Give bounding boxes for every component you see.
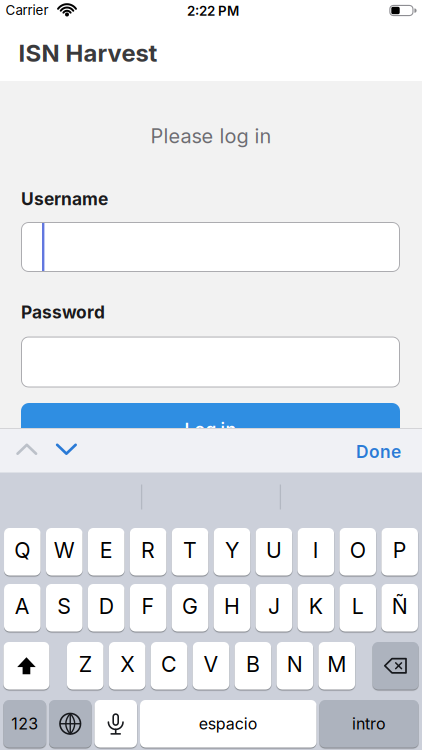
button[interactable]: R (130, 528, 166, 575)
staticText: J (268, 594, 280, 619)
staticText: X (120, 652, 134, 677)
button[interactable]: Ñ (381, 584, 418, 631)
button[interactable]: Username (21, 222, 400, 272)
button[interactable]: Previous field (0, 444, 38, 456)
staticText: Q (14, 538, 30, 563)
button[interactable]: J (256, 584, 292, 631)
button[interactable]: O (339, 528, 376, 575)
staticText: 2:22 PM (187, 3, 239, 19)
staticText: Log in (184, 419, 236, 440)
staticText: I (313, 538, 319, 563)
staticText: U (266, 538, 282, 563)
staticText: A (15, 594, 30, 619)
button[interactable]: K (297, 584, 334, 631)
button[interactable]: Shift (3, 642, 49, 689)
button[interactable]: G (172, 584, 208, 631)
staticText: Password (21, 302, 105, 322)
button[interactable]: Q (4, 528, 41, 575)
button[interactable]: Password (21, 336, 400, 387)
button[interactable]: E (88, 528, 124, 575)
button[interactable]: Log in (21, 403, 400, 453)
button[interactable]: V (193, 642, 229, 689)
staticText: Y (225, 538, 239, 563)
staticText: H (224, 594, 240, 619)
button[interactable]: S (46, 584, 82, 631)
staticText: E (100, 538, 113, 563)
button[interactable]: X (109, 642, 145, 689)
staticText: Done (356, 441, 401, 462)
staticText: O (350, 538, 366, 563)
staticText: 123 (11, 714, 38, 733)
button[interactable]: Y (214, 528, 250, 575)
staticText: Username (21, 189, 108, 209)
staticText: W (54, 538, 75, 563)
staticText: F (142, 594, 155, 619)
button[interactable]: U (256, 528, 292, 575)
button[interactable]: H (214, 584, 250, 631)
button[interactable]: M (318, 642, 355, 689)
button[interactable]: T (172, 528, 208, 575)
button[interactable]: B (235, 642, 271, 689)
staticText: R (141, 538, 155, 563)
staticText: L (352, 594, 364, 619)
button[interactable]: Done (356, 440, 422, 460)
staticText: intro (352, 714, 386, 733)
staticText: espacio (199, 714, 258, 733)
button[interactable]: Next keyboard (49, 700, 91, 747)
button[interactable]: Delete (373, 642, 418, 689)
button[interactable]: P (381, 528, 418, 575)
button[interactable]: I (297, 528, 334, 575)
staticText: Please log in (150, 124, 271, 148)
staticText: G (182, 594, 198, 619)
staticText: C (161, 652, 177, 677)
staticText: ISN Harvest (18, 39, 157, 67)
button[interactable]: intro (319, 700, 418, 747)
button[interactable]: Z (67, 642, 103, 689)
staticText: V (203, 652, 218, 677)
button[interactable]: D (88, 584, 124, 631)
staticText: B (246, 652, 260, 677)
button[interactable]: 123 (3, 700, 46, 747)
button[interactable]: A (4, 584, 41, 631)
button[interactable]: W (46, 528, 82, 575)
button[interactable]: Next field (38, 444, 77, 456)
staticText: N (287, 652, 303, 677)
button[interactable]: N (277, 642, 313, 689)
button[interactable]: C (151, 642, 187, 689)
staticText: Ñ (392, 594, 408, 619)
button[interactable]: F (130, 584, 166, 631)
staticText: S (57, 594, 71, 619)
staticText: M (327, 652, 346, 677)
button[interactable]: L (339, 584, 376, 631)
staticText: P (393, 538, 407, 563)
button[interactable]: Dictate (94, 700, 137, 747)
staticText: T (183, 538, 197, 563)
staticText: Carrier (5, 2, 48, 18)
staticText: K (309, 594, 323, 619)
button[interactable]: espacio (140, 700, 316, 747)
staticText: Z (79, 652, 92, 677)
staticText: D (99, 594, 114, 619)
